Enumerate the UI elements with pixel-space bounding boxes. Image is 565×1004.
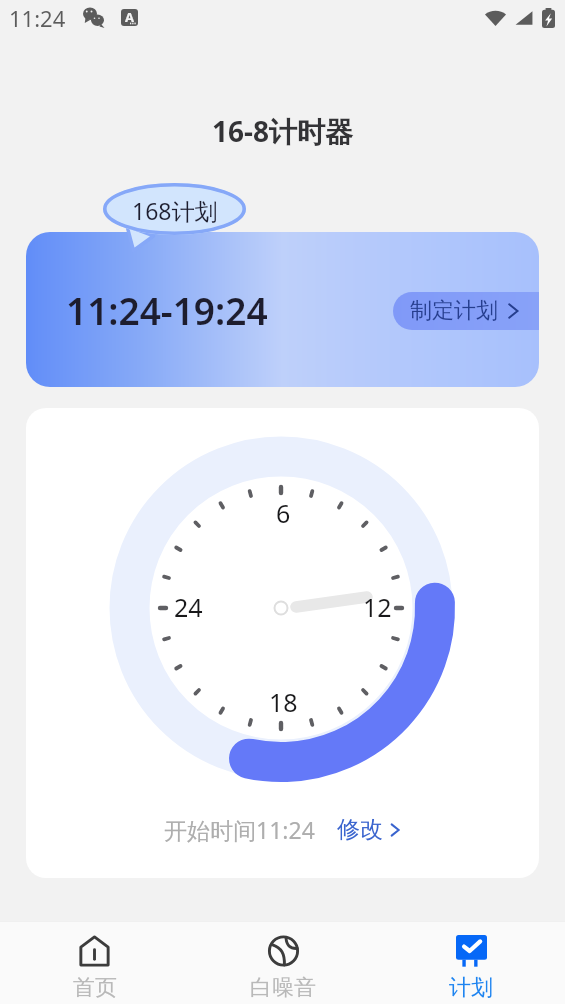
button[interactable]: 修改	[337, 815, 402, 844]
staticText: 白噪音	[250, 974, 316, 1002]
button[interactable]: Plan	[377, 922, 565, 1004]
staticText: 18	[269, 685, 298, 719]
staticText: 24	[174, 590, 203, 624]
staticText: 制定计划	[410, 297, 498, 325]
button[interactable]: White noise	[189, 922, 377, 1004]
staticText: 开始时间11:24	[164, 814, 315, 845]
button[interactable]: Home	[0, 922, 189, 1004]
staticText: 16-8计时器	[212, 112, 354, 150]
staticText: 首页	[73, 974, 117, 1002]
staticText: 12	[363, 590, 392, 624]
button[interactable]: 制定计划	[393, 292, 539, 330]
staticText: 6	[276, 496, 291, 530]
staticText: 11:24-19:24	[66, 285, 268, 335]
staticText: 修改	[337, 815, 383, 844]
button[interactable]: 11:24-19:24	[26, 232, 539, 387]
staticText: A	[125, 8, 134, 25]
staticText: 11:24	[9, 3, 66, 33]
staticText: 168计划	[132, 195, 218, 226]
staticText: 计划	[449, 974, 493, 1002]
